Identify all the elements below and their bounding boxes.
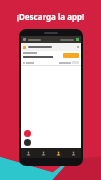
button[interactable]: Pestaña 4 (66, 148, 81, 158)
button[interactable] (63, 53, 79, 58)
button[interactable]: Menú (24, 139, 31, 146)
button[interactable]: Pestaña 2 (36, 148, 51, 158)
button[interactable] (23, 43, 79, 51)
staticText: ¡Descarga la app! (0, 11, 101, 22)
button[interactable]: Pestaña 3 (51, 148, 66, 158)
button[interactable]: Pestaña 1 (21, 148, 36, 158)
button[interactable]: Nueva alerta (24, 130, 31, 137)
